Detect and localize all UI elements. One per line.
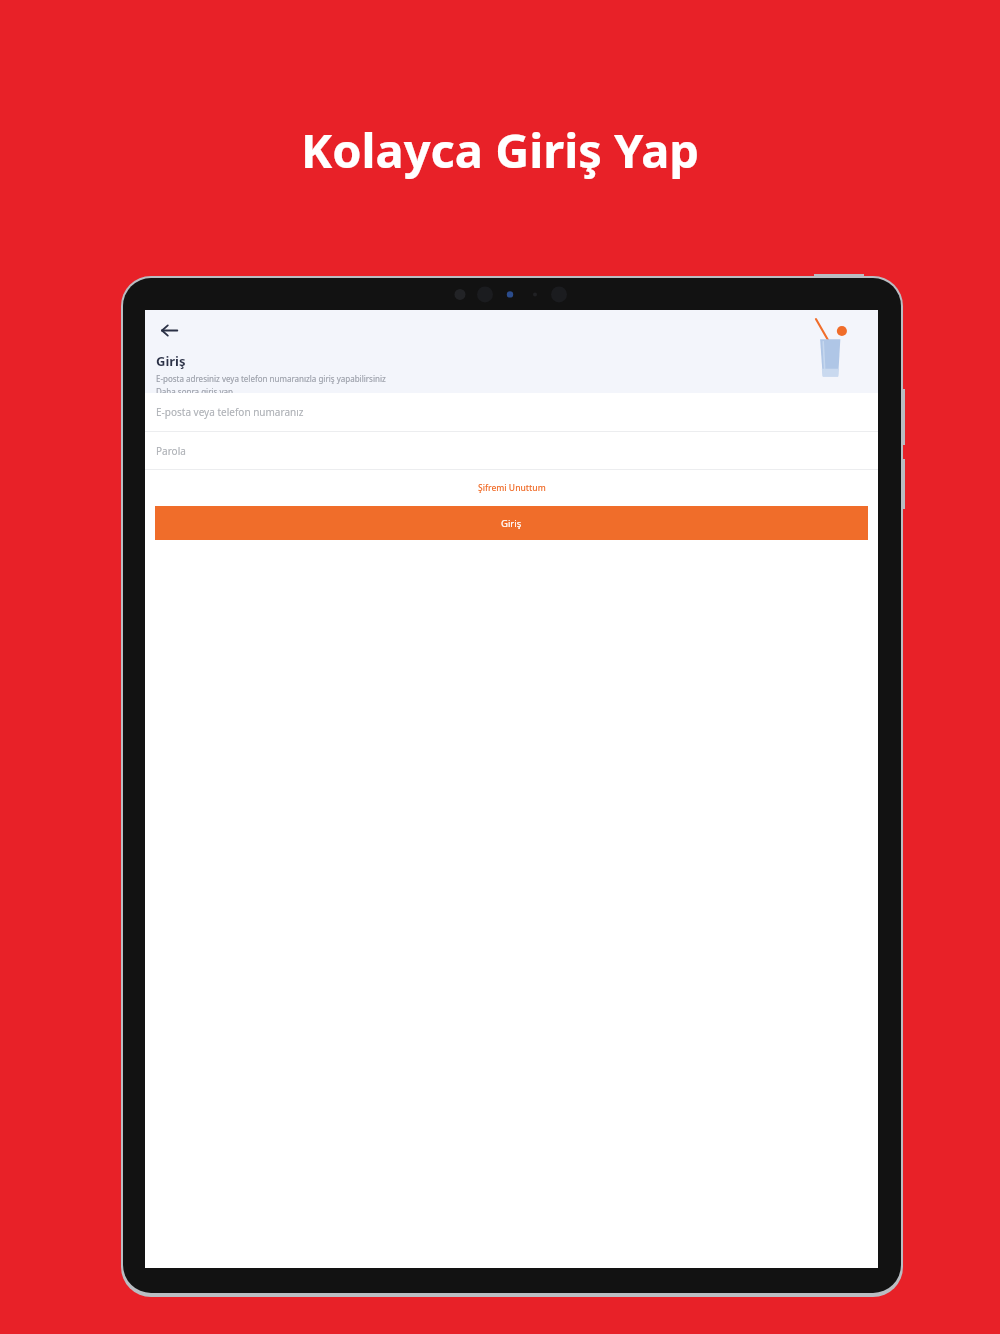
staticText: Giriş (156, 352, 186, 370)
staticText: E-posta veya telefon numaranız (156, 405, 304, 419)
button[interactable]: Şifremi Unuttum (470, 478, 554, 498)
button[interactable]: Giriş (155, 506, 868, 540)
staticText: Giriş (501, 517, 522, 530)
staticText: E-posta adresiniz veya telefon numaranız… (156, 373, 386, 384)
staticText: Parola (156, 444, 186, 458)
button[interactable]: Daha sonra giriş yap (156, 386, 233, 393)
staticText: Kolayca Giriş Yap (0, 118, 1000, 182)
staticText: Şifremi Unuttum (478, 482, 546, 494)
button[interactable]: Back (156, 317, 182, 343)
button[interactable]: E-posta veya telefon numaranız (145, 393, 878, 431)
button[interactable]: Parola (145, 432, 878, 469)
